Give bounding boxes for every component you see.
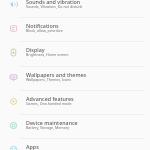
staticText: Battery, Storage, Memory — [26, 125, 70, 130]
button[interactable]: Notifications — [0, 17, 150, 41]
staticText: Display — [26, 46, 45, 53]
staticText: Default apps, App permissions — [26, 149, 78, 150]
staticText: Wallpapers and themes — [26, 71, 87, 78]
button[interactable]: Sounds and vibration — [0, 0, 150, 17]
staticText: Brightness, Home screen — [26, 52, 69, 57]
staticText: Sounds and vibration — [26, 0, 81, 5]
staticText: Sounds, Vibration, Do not disturb — [26, 4, 83, 9]
button[interactable]: Display — [0, 41, 150, 65]
button[interactable]: Wallpapers and themes — [0, 66, 150, 90]
staticText: Block, allow, prioritize — [26, 28, 63, 33]
button[interactable]: Device maintenance — [0, 114, 150, 138]
staticText: Games, One-handed mode — [26, 101, 72, 106]
staticText: Device maintenance — [26, 119, 78, 126]
staticText: Apps — [26, 143, 39, 150]
staticText: Wallpapers, Themes, Icons — [26, 77, 72, 82]
staticText: Advanced features — [26, 95, 74, 102]
button[interactable]: Apps — [0, 138, 150, 150]
staticText: Notifications — [26, 22, 59, 29]
button[interactable]: Advanced features — [0, 90, 150, 114]
